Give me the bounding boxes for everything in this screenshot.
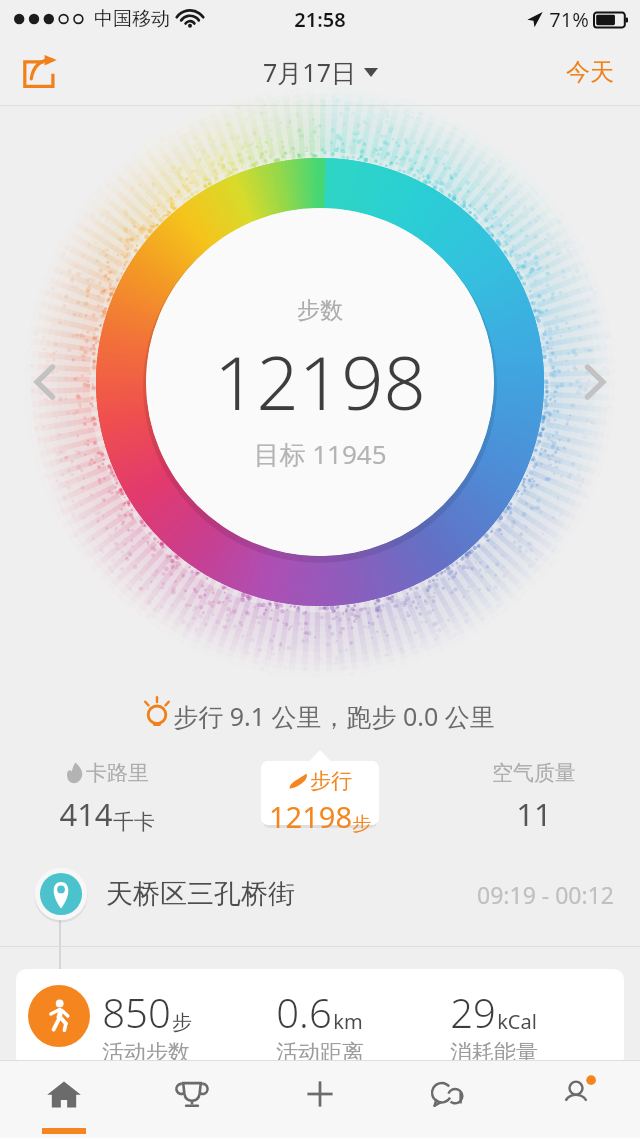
staticText: 11 xyxy=(516,793,552,835)
button[interactable]: Home xyxy=(0,1060,128,1138)
staticText: 7月17日 xyxy=(263,55,356,89)
staticText: 步 xyxy=(172,1010,192,1035)
staticText: 0.6 xyxy=(276,985,332,1039)
staticText: 卡路里 xyxy=(86,760,149,786)
button[interactable]: 天桥区三孔桥街 xyxy=(0,850,640,946)
staticText: 中国移动 xyxy=(94,7,170,31)
button[interactable]: Add xyxy=(256,1060,384,1138)
button[interactable]: 今天 xyxy=(566,57,614,87)
button[interactable]: Profile xyxy=(512,1060,640,1138)
staticText: 活动步数 xyxy=(102,1039,190,1067)
button[interactable]: 7月17日 xyxy=(263,55,378,89)
button[interactable]: Next day xyxy=(572,359,618,405)
staticText: 09:19 - 00:12 xyxy=(477,879,614,910)
staticText: 今天 xyxy=(566,57,614,87)
staticText: 千卡 xyxy=(113,809,155,835)
staticText: 目标 11945 xyxy=(253,436,387,472)
staticText: 空气质量 xyxy=(492,760,576,786)
staticText: 消耗能量 xyxy=(450,1039,538,1067)
staticText: 步行 xyxy=(310,768,352,794)
staticText: 活动距离 xyxy=(276,1039,364,1067)
staticText: 21:58 xyxy=(294,6,346,33)
button[interactable]: 卡路里 xyxy=(0,760,214,835)
staticText: 步行 9.1 公里，跑步 0.0 公里 xyxy=(173,699,495,733)
staticText: 850 xyxy=(102,985,171,1039)
button[interactable]: Chat xyxy=(384,1060,512,1138)
button[interactable]: 步行 xyxy=(261,750,379,836)
staticText: 12198 xyxy=(214,331,426,432)
button[interactable]: Achievements xyxy=(128,1060,256,1138)
staticText: 步数 xyxy=(297,296,343,325)
staticText: 414 xyxy=(59,793,113,835)
staticText: 12198 xyxy=(269,797,352,836)
staticText: 29 xyxy=(450,985,496,1039)
button[interactable]: 850 xyxy=(16,969,624,1067)
button[interactable]: Share xyxy=(12,44,68,100)
staticText: kCal xyxy=(497,1008,537,1035)
staticText: 步 xyxy=(352,812,371,836)
staticText: km xyxy=(333,1008,363,1035)
staticText: 71% xyxy=(549,6,589,33)
button[interactable]: 空气质量 xyxy=(427,760,640,835)
button[interactable]: Previous day xyxy=(22,359,68,405)
staticText: 天桥区三孔桥街 xyxy=(106,877,295,911)
